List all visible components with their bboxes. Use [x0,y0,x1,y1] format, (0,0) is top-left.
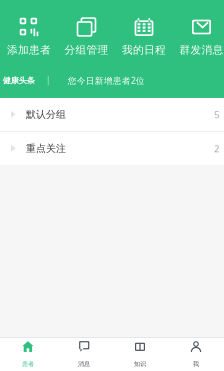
staticText: 默认分组 [26,108,66,121]
staticText: 分组管理 [64,43,108,57]
staticText: 消息 [78,360,90,368]
button[interactable]: 添加患者 [0,17,58,55]
button[interactable]: 消息 [56,342,112,366]
staticText: 患者 [22,360,34,368]
staticText: 知识 [134,360,146,368]
staticText: 您今日新增患者2位 [68,75,145,86]
staticText: 重点关注 [26,142,66,155]
button[interactable]: 分组管理 [58,17,115,55]
button[interactable]: 患者 [0,342,56,366]
staticText: 群发消息 [179,43,223,57]
staticText: 5 [214,108,219,121]
button[interactable]: 重点关注 [0,132,224,165]
button[interactable]: 群发消息 [173,17,224,55]
staticText: 我的日程 [122,43,166,57]
staticText: 健康头条 [3,75,35,86]
staticText: 我 [193,360,199,368]
staticText: 添加患者 [7,43,51,57]
staticText: 2 [214,142,219,155]
button[interactable]: 我的日程 [115,17,173,55]
button[interactable]: 我 [168,342,224,366]
button[interactable]: 知识 [112,342,168,366]
button[interactable]: 默认分组 [0,98,224,131]
